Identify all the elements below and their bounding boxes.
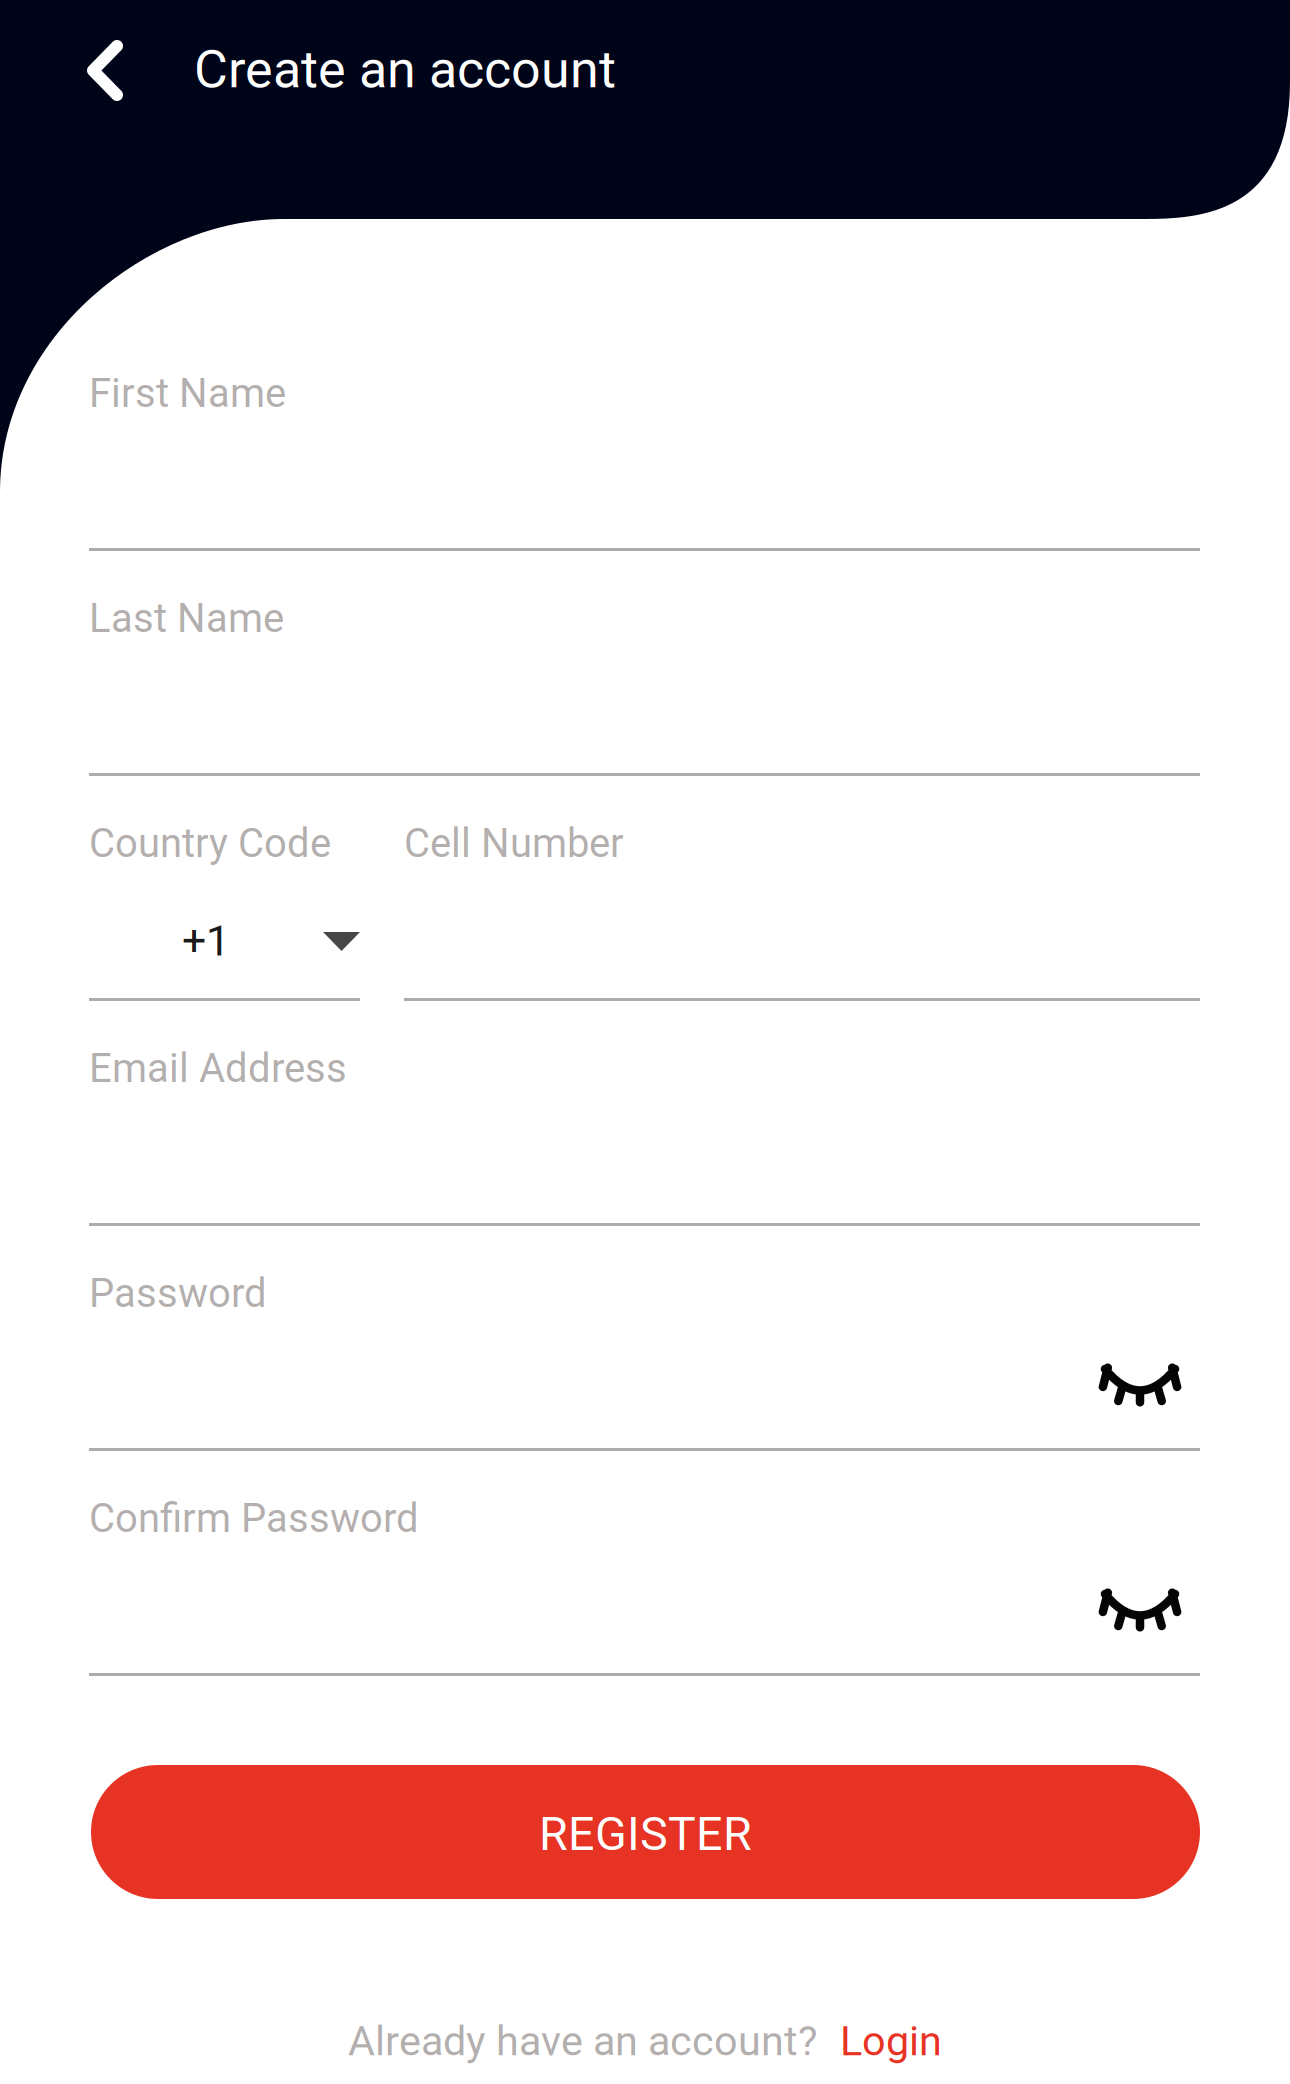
staticText: Confirm Password — [89, 1495, 419, 1542]
button[interactable]: REGISTER — [91, 1765, 1200, 1899]
button[interactable]: Login — [840, 2017, 942, 2065]
button[interactable]: Show password — [1065, 1329, 1215, 1441]
staticText: Create an account — [194, 39, 616, 100]
staticText: Cell Number — [404, 820, 624, 867]
staticText: Password — [89, 1270, 267, 1317]
staticText: +1 — [182, 916, 230, 966]
staticText: Login — [840, 2017, 942, 2065]
staticText: First Name — [89, 370, 286, 417]
staticText: REGISTER — [539, 1807, 752, 1861]
staticText: Country Code — [89, 820, 331, 867]
staticText: Already have an account? — [348, 2017, 818, 2065]
staticText: Last Name — [89, 595, 284, 642]
button[interactable]: Country code — [89, 900, 360, 980]
button[interactable]: Back — [53, 6, 157, 135]
staticText: Email Address — [89, 1045, 347, 1092]
button[interactable]: Show confirm password — [1065, 1554, 1215, 1666]
